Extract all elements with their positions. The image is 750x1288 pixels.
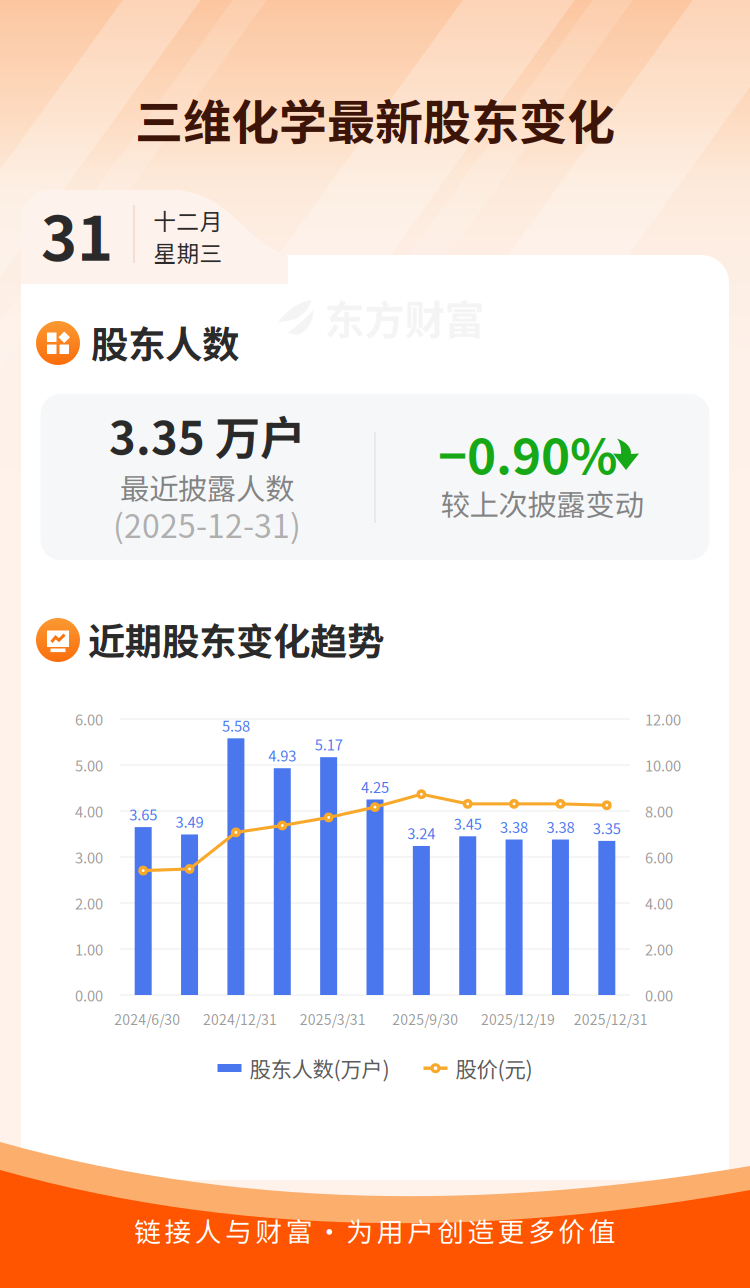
staticText: 6.00	[75, 708, 103, 730]
staticText: 较上次披露变动	[440, 482, 643, 524]
staticText: 近期股东变化趋势	[88, 612, 384, 666]
staticText: 3.24	[407, 822, 435, 843]
staticText: 6.00	[645, 846, 673, 868]
staticText: 3.35 万户	[109, 402, 305, 468]
staticText: 12.00	[645, 708, 681, 730]
staticText: 5.58	[222, 715, 250, 736]
staticText: 2.00	[75, 892, 103, 914]
staticText: 4.00	[75, 800, 103, 822]
staticText: 2.00	[645, 938, 673, 960]
staticText: 星期三	[153, 236, 222, 268]
staticText: 1.00	[75, 938, 103, 960]
staticText: 最近披露人数	[120, 466, 294, 508]
staticText: 0.00	[645, 984, 673, 1006]
staticText: 4.00	[645, 892, 673, 914]
staticText: 2025/12/31	[574, 1009, 648, 1029]
staticText: 三维化学最新股东变化	[135, 84, 615, 154]
staticText: 3.38	[546, 816, 574, 837]
staticText: 2025/12/19	[481, 1009, 555, 1029]
staticText: 2024/6/30	[114, 1009, 180, 1029]
staticText: (2025-12-31)	[113, 501, 301, 547]
staticText: 东方财富	[324, 288, 484, 346]
staticText: 3.00	[75, 846, 103, 868]
staticText: 3.65	[129, 803, 157, 825]
staticText: 5.00	[75, 754, 103, 776]
staticText: 股东人数(万户)	[249, 1053, 389, 1083]
staticText: 2025/3/31	[300, 1009, 366, 1029]
staticText: 5.17	[315, 734, 343, 755]
staticText: 3.38	[500, 816, 528, 837]
staticText: 2025/9/30	[392, 1009, 458, 1029]
staticText: 3.45	[454, 813, 482, 834]
staticText: 股价(元)	[455, 1053, 532, 1083]
staticText: 十二月	[153, 204, 222, 236]
staticText: 4.93	[268, 745, 296, 766]
staticText: 2024/12/31	[203, 1009, 277, 1029]
staticText: 4.25	[361, 776, 389, 797]
staticText: 链接人与财富·为用户创造更多价值	[134, 1211, 616, 1249]
staticText: 31	[41, 190, 113, 278]
staticText: −0.90%	[438, 417, 618, 489]
staticText: 股东人数	[91, 315, 239, 369]
staticText: 3.49	[175, 811, 203, 832]
staticText: 0.00	[75, 984, 103, 1006]
staticText: 10.00	[645, 754, 681, 776]
staticText: 3.35	[593, 817, 621, 838]
staticText: 8.00	[645, 800, 673, 822]
